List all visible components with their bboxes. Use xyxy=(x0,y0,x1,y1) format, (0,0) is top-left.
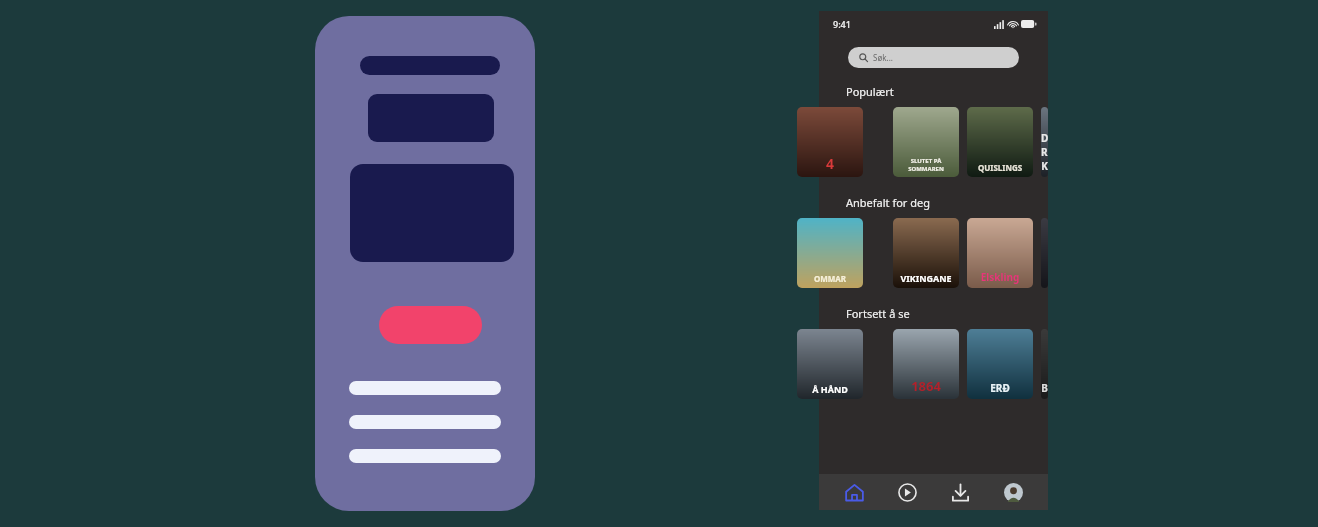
staticText: 1864 xyxy=(893,377,959,395)
staticText: DRUK xyxy=(1041,131,1048,173)
staticText: 4 xyxy=(797,154,863,173)
staticText: Populært xyxy=(846,84,894,99)
staticText: OMMAR xyxy=(797,273,863,284)
button[interactable]: DRUK xyxy=(1041,107,1048,177)
staticText: Anbefalt for deg xyxy=(846,195,930,210)
button[interactable]: OMMAR xyxy=(797,218,863,288)
button[interactable]: SLUTET PÅ SOMMAREN xyxy=(893,107,959,177)
staticText: Fortsett å se xyxy=(846,306,910,321)
staticText: B xyxy=(1041,381,1048,395)
button[interactable]: 4 xyxy=(797,107,863,177)
staticText: VIKINGANE xyxy=(893,272,959,284)
button[interactable] xyxy=(1041,218,1048,288)
staticText: ERÐ xyxy=(967,381,1033,395)
button[interactable]: B xyxy=(1041,329,1048,399)
button[interactable]: Play xyxy=(889,474,925,510)
button[interactable]: Søk... xyxy=(848,47,1019,68)
button[interactable]: Elskling xyxy=(967,218,1033,288)
button[interactable]: VIKINGANE xyxy=(893,218,959,288)
staticText: SLUTET PÅ SOMMAREN xyxy=(893,157,959,173)
staticText: 9:41 xyxy=(833,18,851,30)
button[interactable]: Home xyxy=(836,474,872,510)
button[interactable]: QUISLINGS xyxy=(967,107,1033,177)
button[interactable] xyxy=(379,306,482,344)
button[interactable]: Downloads xyxy=(942,474,978,510)
staticText: Elskling xyxy=(967,270,1033,284)
button[interactable]: 1864 xyxy=(893,329,959,399)
button[interactable]: Å HÅND xyxy=(797,329,863,399)
staticText: Å HÅND xyxy=(797,383,863,395)
button[interactable]: Profile xyxy=(995,474,1031,510)
button[interactable]: ERÐ xyxy=(967,329,1033,399)
staticText: Søk... xyxy=(873,52,893,63)
staticText: QUISLINGS xyxy=(967,162,1033,173)
